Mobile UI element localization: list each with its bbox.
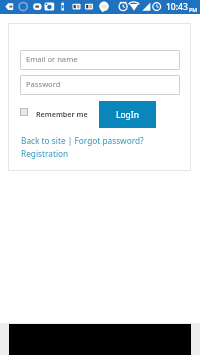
staticText: 10:43 [166, 1, 188, 13]
staticText: Email or name [26, 54, 78, 64]
staticText: LogIn [116, 109, 139, 121]
button[interactable]: Remember me [20, 106, 88, 120]
button[interactable]: LogIn [99, 101, 156, 128]
button[interactable]: Back to site | Forgot password? [21, 135, 144, 146]
staticText: Remember me [36, 109, 88, 119]
button[interactable]: Password [20, 75, 180, 95]
staticText: Password [26, 79, 61, 89]
button[interactable]: Registration [21, 148, 69, 159]
staticText: PM [189, 6, 198, 13]
button[interactable]: Email or name [20, 50, 180, 70]
